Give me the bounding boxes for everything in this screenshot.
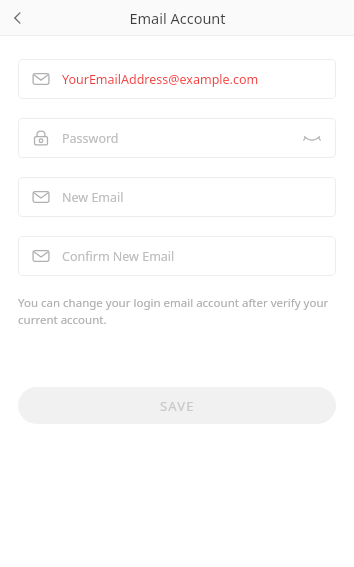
button[interactable]: YourEmailAddress@example.com xyxy=(18,59,336,99)
button[interactable]: New Email xyxy=(18,177,336,217)
button[interactable]: Confirm New Email xyxy=(18,236,336,276)
button[interactable]: Back xyxy=(0,0,36,36)
staticText: YourEmailAddress@example.com xyxy=(62,71,259,88)
button[interactable]: SAVE xyxy=(18,387,336,424)
button[interactable]: Show password xyxy=(300,126,324,150)
staticText: SAVE xyxy=(160,397,195,415)
staticText: Email Account xyxy=(129,8,226,28)
staticText: You can change your login email account … xyxy=(18,295,336,327)
staticText: New Email xyxy=(62,189,124,206)
staticText: Confirm New Email xyxy=(62,248,175,265)
button[interactable]: Password xyxy=(18,118,336,158)
staticText: Password xyxy=(62,130,119,147)
